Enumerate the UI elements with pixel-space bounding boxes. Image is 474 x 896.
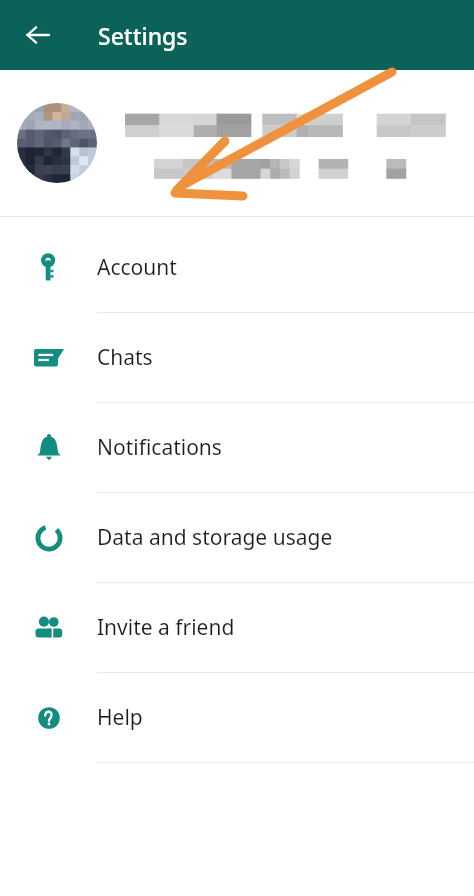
- button[interactable]: [0, 70, 474, 216]
- button[interactable]: Back: [14, 11, 62, 59]
- staticText: Account: [97, 253, 177, 282]
- button[interactable]: Invite a friend: [0, 583, 474, 672]
- button[interactable]: Data and storage usage: [0, 493, 474, 582]
- staticText: Notifications: [97, 433, 222, 462]
- staticText: Data and storage usage: [97, 523, 333, 552]
- staticText: Settings: [98, 20, 188, 51]
- staticText: Help: [97, 703, 143, 732]
- staticText: Invite a friend: [97, 613, 235, 642]
- staticText: Chats: [97, 343, 153, 372]
- button[interactable]: Notifications: [0, 403, 474, 492]
- button[interactable]: Help: [0, 673, 474, 762]
- button[interactable]: Chats: [0, 313, 474, 402]
- button[interactable]: Account: [0, 223, 474, 312]
